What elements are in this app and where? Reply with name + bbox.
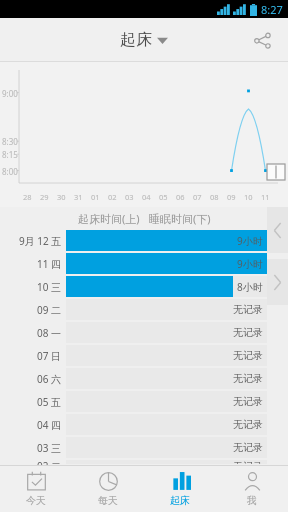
staticText: 8:15 (2, 149, 18, 160)
button[interactable]: 11 四 (0, 252, 288, 275)
button[interactable]: 07 日 (0, 344, 288, 367)
button[interactable]: 我 (216, 466, 288, 512)
staticText: 9小时 (237, 234, 263, 248)
staticText: 08 (210, 192, 219, 202)
staticText: 今天 (26, 494, 46, 507)
staticText: 03 三 (37, 441, 62, 455)
button[interactable]: 10 三 (0, 275, 288, 298)
button[interactable]: 03 三 (0, 436, 288, 459)
button[interactable]: 05 五 (0, 390, 288, 413)
staticText: 11 (261, 192, 270, 202)
button[interactable]: 每天 (72, 466, 144, 512)
staticText: 8:00 (2, 166, 18, 177)
staticText: 05 五 (37, 395, 62, 409)
staticText: 起床 (170, 494, 190, 507)
staticText: 无记录 (233, 303, 263, 316)
staticText: 我 (247, 494, 257, 507)
button[interactable]: 9月 12 五 (0, 229, 288, 252)
staticText: 9:00 (2, 88, 18, 99)
staticText: 07 日 (37, 349, 62, 363)
button[interactable]: 06 六 (0, 367, 288, 390)
staticText: 无记录 (233, 441, 263, 454)
button[interactable]: Previous (267, 207, 288, 253)
staticText: 11 四 (37, 257, 62, 271)
button[interactable]: Next (267, 259, 288, 305)
staticText: 8:27 (261, 2, 283, 17)
staticText: 28 (23, 192, 32, 202)
staticText: 起床时间(上) (78, 211, 140, 226)
staticText: 07 (193, 192, 202, 202)
staticText: 无记录 (233, 326, 263, 339)
staticText: 9月 12 五 (19, 234, 62, 248)
staticText: 起床 (120, 30, 152, 50)
button[interactable]: 起床 (144, 466, 216, 512)
staticText: 02 (108, 192, 117, 202)
button[interactable]: 08 一 (0, 321, 288, 344)
staticText: 每天 (98, 494, 118, 507)
staticText: 无记录 (233, 395, 263, 408)
staticText: 04 四 (37, 418, 62, 432)
staticText: 06 六 (37, 372, 62, 386)
button[interactable]: 04 四 (0, 413, 288, 436)
staticText: 05 (159, 192, 168, 202)
button[interactable]: 09 二 (0, 298, 288, 321)
staticText: 01 (91, 192, 100, 202)
staticText: 31 (74, 192, 83, 202)
staticText: 10 三 (37, 280, 62, 294)
staticText: 无记录 (233, 460, 263, 464)
staticText: 无记录 (233, 349, 263, 362)
staticText: 02 二 (37, 459, 62, 465)
staticText: 04 (142, 192, 151, 202)
button[interactable]: Share (246, 24, 278, 56)
staticText: 29 (40, 192, 49, 202)
staticText: 10 (244, 192, 253, 202)
staticText: 30 (57, 192, 66, 202)
button[interactable]: 今天 (0, 466, 72, 512)
staticText: 06 (176, 192, 185, 202)
staticText: 8:30 (2, 136, 18, 147)
staticText: 睡眠时间(下) (149, 211, 211, 226)
staticText: 03 (125, 192, 134, 202)
staticText: 无记录 (233, 372, 263, 385)
staticText: 9小时 (237, 257, 263, 271)
staticText: 09 二 (37, 303, 62, 317)
staticText: 08 一 (37, 326, 62, 340)
button[interactable]: Chart range (267, 164, 285, 180)
staticText: 09 (227, 192, 236, 202)
button[interactable]: 起床 (112, 24, 176, 56)
staticText: 8小时 (237, 280, 263, 294)
staticText: 无记录 (233, 418, 263, 431)
button[interactable]: 02 二 (0, 459, 288, 465)
